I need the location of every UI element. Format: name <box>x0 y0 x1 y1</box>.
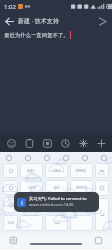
button[interactable]: Keyboard tool 1 <box>23 153 32 162</box>
button[interactable]: DEL <box>95 163 109 178</box>
button[interactable]: ENTER <box>95 198 109 231</box>
staticText: DEF <box>53 168 61 174</box>
staticText: ， <box>29 221 34 226</box>
button[interactable]: Translate <box>75 135 91 151</box>
button[interactable]: Send <box>95 14 109 28</box>
staticText: www.rmbed.com:1440 <box>29 202 74 208</box>
staticText: GHI <box>28 185 36 191</box>
button[interactable]: TUV <box>45 197 68 213</box>
staticText: 最近为什么一直回复不了。 <box>4 32 69 39</box>
button[interactable]: Clipboard <box>21 135 37 151</box>
button[interactable]: 。 <box>70 215 93 231</box>
button[interactable]: PQRS <box>20 197 43 213</box>
button[interactable]: Keyboard tool 3 <box>61 153 70 162</box>
staticText: 123 <box>7 220 15 226</box>
button[interactable]: ， <box>20 215 43 231</box>
button[interactable]: Voice <box>57 135 73 151</box>
button[interactable]: SYM <box>70 197 93 213</box>
button[interactable]: GHI <box>20 180 43 195</box>
button[interactable]: ABC <box>20 163 43 178</box>
button[interactable]: Sticker <box>39 135 55 151</box>
button[interactable]: More <box>93 135 109 151</box>
button[interactable]: SYM <box>3 163 18 178</box>
staticText: 新建 · 技术支持 <box>18 17 59 25</box>
staticText: TUV <box>53 202 61 208</box>
staticText: PQRS <box>26 202 37 208</box>
button[interactable]: SPACE <box>45 215 68 231</box>
button[interactable]: JKL <box>45 180 68 195</box>
button[interactable]: Keyboard switch <box>9 236 18 245</box>
button[interactable]: SYM <box>3 197 18 213</box>
staticText: ABC <box>27 168 36 174</box>
button[interactable]: Back <box>2 14 16 28</box>
staticText: 。 <box>79 221 84 226</box>
button[interactable]: Emoji <box>3 135 19 151</box>
button[interactable]: Keyboard tool 4 <box>80 153 89 162</box>
button[interactable]: MNO <box>70 163 93 178</box>
button[interactable]: 123 <box>3 215 18 231</box>
staticText: 1:02 <box>4 3 16 11</box>
button[interactable]: WXYZ <box>70 180 93 195</box>
button[interactable]: Keyboard tool 0 <box>4 153 13 162</box>
button[interactable]: Keyboard tool 5 <box>99 153 108 162</box>
staticText: JKL <box>54 185 60 191</box>
button[interactable]: SYM <box>95 180 109 196</box>
button[interactable]: SYM <box>3 180 18 195</box>
button[interactable]: Keyboard tool 2 <box>42 153 51 162</box>
button[interactable]: DEF <box>45 163 68 178</box>
staticText: WXYZ <box>76 185 88 191</box>
staticText: MNO <box>76 168 87 174</box>
button[interactable]: Hide keyboard <box>94 236 103 245</box>
staticText: 实习天气: Failed to connect to <box>29 196 87 202</box>
